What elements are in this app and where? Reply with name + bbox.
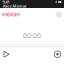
button[interactable] — [3, 50, 10, 58]
button[interactable]: Record — [54, 51, 61, 58]
staticText: 9:41 — [2, 0, 9, 5]
staticText: Voice Memos — [2, 3, 26, 9]
staticText: 00:00 — [23, 31, 41, 40]
